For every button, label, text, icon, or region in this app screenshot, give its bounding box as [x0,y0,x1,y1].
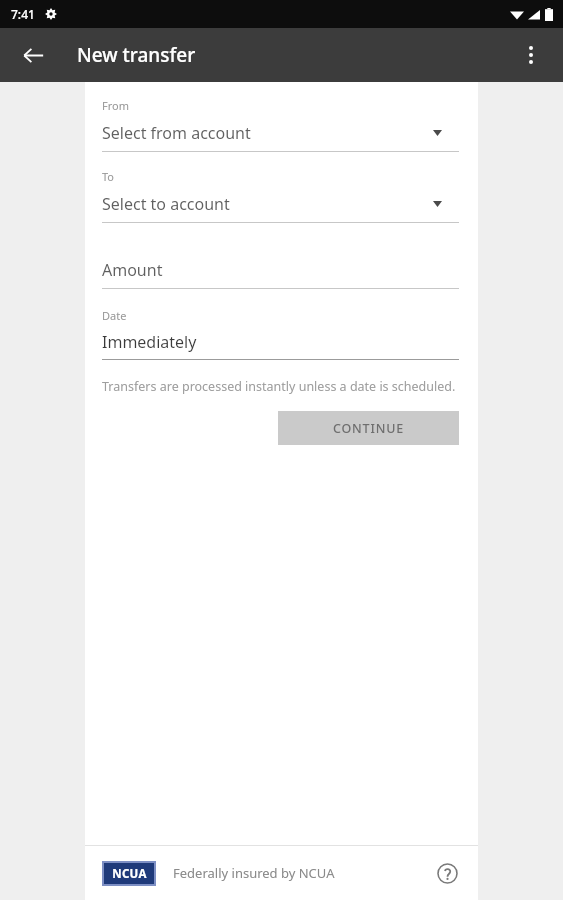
staticText: Federally insured by NCUA [173,864,335,882]
button[interactable]: From [102,98,459,152]
staticText: 7:41 [11,6,35,22]
staticText: Transfers are processed instantly unless… [102,378,456,395]
button[interactable]: Amount [102,259,459,289]
button[interactable]: Back [12,34,54,76]
staticText: CONTINUE [333,420,404,437]
staticText: Select to account [102,193,230,215]
staticText: Date [102,308,127,323]
button[interactable]: More options [509,33,553,77]
button[interactable]: Help [428,854,466,892]
button[interactable]: To [102,169,459,223]
staticText: NCUA [112,866,147,882]
staticText: Amount [102,259,163,281]
staticText: Select from account [102,122,251,144]
staticText: To [102,169,115,184]
staticText: New transfer [77,42,196,68]
staticText: Immediately [102,331,197,353]
staticText: From [102,98,129,113]
button[interactable]: CONTINUE [278,411,459,445]
button[interactable]: Date [102,308,459,360]
